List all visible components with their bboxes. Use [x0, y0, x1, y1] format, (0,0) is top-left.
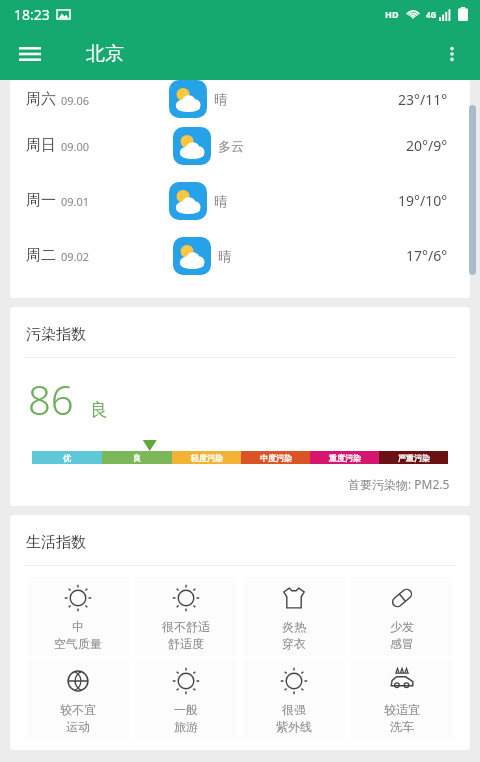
staticText: 19°/10°	[398, 191, 448, 210]
staticText: 20°/9°	[406, 136, 448, 155]
staticText: 晴	[214, 193, 227, 209]
button[interactable]: 较不宜	[27, 660, 129, 739]
button[interactable]: 炎热	[243, 577, 345, 656]
button[interactable]: 周一	[10, 173, 470, 228]
staticText: 中度污染	[260, 453, 292, 463]
staticText: 生活指数	[26, 533, 86, 552]
button[interactable]: 周二	[10, 228, 470, 283]
staticText: HD	[385, 8, 399, 20]
staticText: 09.01	[61, 194, 90, 209]
staticText: 轻度污染	[191, 453, 223, 463]
button[interactable]: 周日	[10, 118, 470, 173]
staticText: 污染指数	[26, 325, 86, 344]
button[interactable]: 较适宜	[351, 660, 453, 739]
button[interactable]: 一般	[135, 660, 237, 739]
staticText: 洗车	[390, 719, 414, 734]
staticText: 4G	[426, 9, 437, 20]
staticText: 运动	[66, 719, 90, 734]
staticText: 09.06	[61, 93, 90, 108]
staticText: 炎热	[282, 619, 306, 634]
staticText: 中	[72, 619, 84, 634]
staticText: 较不宜	[60, 702, 96, 717]
button[interactable]: 周六	[10, 80, 470, 118]
staticText: 很强	[282, 702, 306, 717]
button[interactable]: 少发	[351, 577, 453, 656]
staticText: 23°/11°	[398, 90, 448, 109]
staticText: 18:23	[14, 5, 50, 24]
staticText: 舒适度	[168, 636, 204, 651]
staticText: 紫外线	[276, 719, 312, 734]
staticText: 17°/6°	[406, 246, 448, 265]
button[interactable]: 中	[27, 577, 129, 656]
staticText: 严重污染	[398, 453, 430, 463]
button[interactable]: More options	[430, 32, 474, 76]
staticText: 晴	[218, 248, 231, 264]
staticText: 重度污染	[329, 453, 361, 463]
staticText: 少发	[390, 619, 414, 634]
staticText: 良	[90, 399, 108, 422]
staticText: 一般	[174, 702, 198, 717]
staticText: 09.00	[61, 139, 90, 154]
staticText: 感冒	[390, 636, 414, 651]
staticText: 86	[28, 372, 74, 426]
staticText: 晴	[214, 91, 227, 107]
staticText: 穿衣	[282, 636, 306, 651]
staticText: 多云	[218, 138, 244, 154]
staticText: 北京	[86, 42, 124, 66]
staticText: 周一	[26, 191, 56, 210]
staticText: 优	[63, 453, 71, 463]
button[interactable]: 很强	[243, 660, 345, 739]
staticText: 很不舒适	[162, 619, 210, 634]
staticText: 首要污染物: PM2.5	[348, 476, 450, 492]
staticText: 周二	[26, 246, 56, 265]
staticText: 周日	[26, 136, 56, 155]
staticText: 良	[133, 453, 141, 463]
staticText: 周六	[26, 90, 56, 109]
staticText: 09.02	[61, 249, 90, 264]
staticText: 较适宜	[384, 702, 420, 717]
button[interactable]: 很不舒适	[135, 577, 237, 656]
button[interactable]: 污染指数	[10, 307, 470, 506]
staticText: 旅游	[174, 719, 198, 734]
staticText: 空气质量	[54, 636, 102, 651]
button[interactable]: Menu	[8, 32, 52, 76]
